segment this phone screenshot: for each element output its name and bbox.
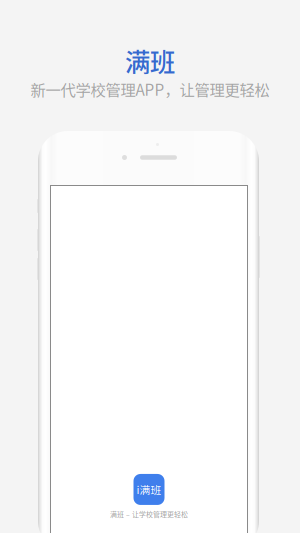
staticText: 满班 [125, 42, 175, 79]
staticText: i满班 [136, 482, 161, 497]
staticText: 新一代学校管理APP，让管理更轻松 [30, 78, 269, 100]
staticText: 满班 – 让学校管理更轻松 [110, 509, 188, 519]
